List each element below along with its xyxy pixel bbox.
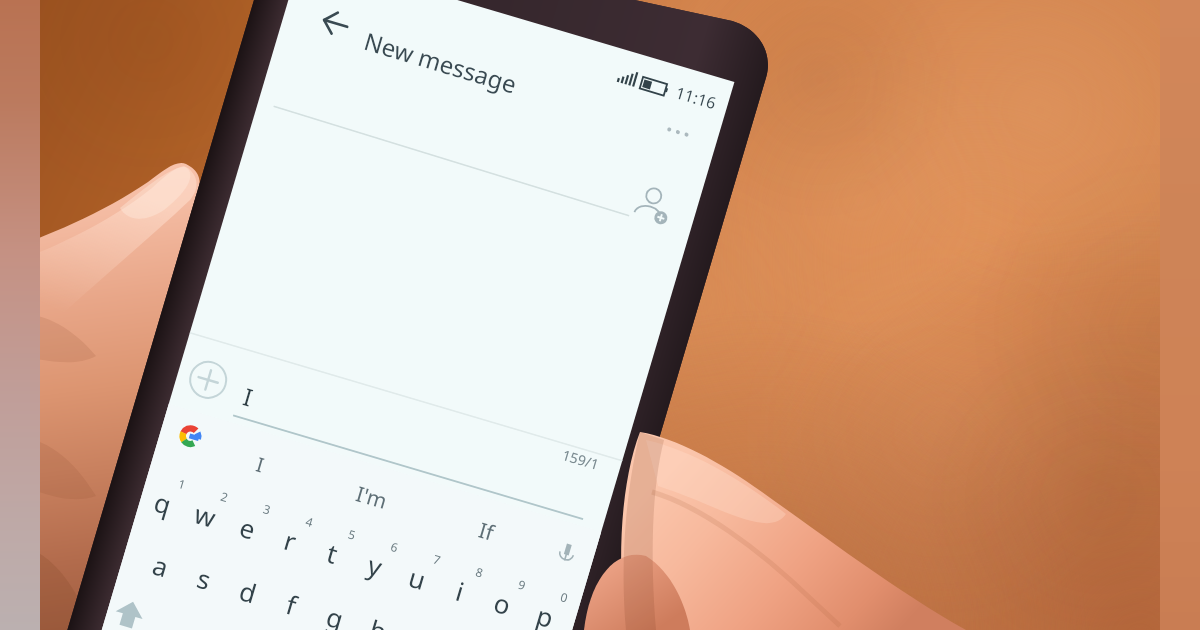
button[interactable] [136,506,196,575]
button[interactable] [268,545,327,614]
button[interactable]: Overflow menu [650,96,722,156]
button[interactable] [251,603,310,630]
button[interactable]: Add attachment [178,339,246,408]
button[interactable] [346,0,611,124]
button[interactable] [224,532,283,601]
button[interactable] [487,610,547,630]
button[interactable]: Navigate up [301,0,373,52]
button[interactable] [270,483,329,552]
button[interactable]: Google Assistant [160,402,219,460]
button[interactable] [443,535,503,603]
button[interactable] [339,629,399,630]
button[interactable] [486,547,546,616]
button[interactable]: Voice input [536,513,595,571]
button[interactable] [329,452,427,521]
button[interactable]: Shift [108,560,182,630]
button[interactable] [216,418,311,487]
button[interactable] [529,560,589,629]
button[interactable] [233,354,567,507]
button[interactable] [312,558,372,627]
button[interactable] [313,496,372,564]
button[interactable] [181,519,240,588]
button[interactable] [444,486,538,554]
button[interactable] [226,470,286,539]
button[interactable] [356,571,416,630]
button[interactable]: Add recipient [619,162,700,240]
button[interactable] [400,522,460,590]
button[interactable] [208,590,267,630]
button[interactable] [140,445,200,513]
button[interactable] [183,458,243,526]
button[interactable] [295,616,354,630]
button[interactable] [357,509,416,577]
button[interactable] [164,577,223,630]
button[interactable] [399,584,459,630]
button[interactable] [443,597,503,630]
